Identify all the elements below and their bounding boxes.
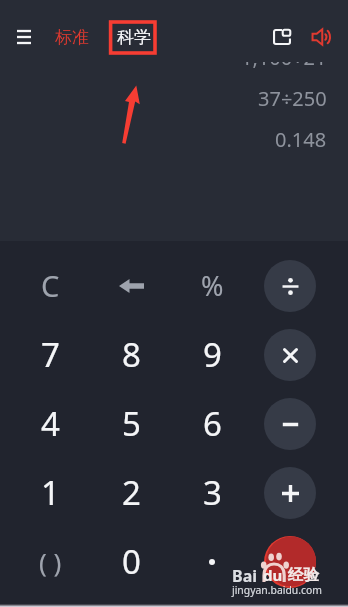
staticText: 4 xyxy=(41,401,60,446)
staticText: 5 xyxy=(122,401,141,446)
staticText: 6 xyxy=(203,401,222,446)
button[interactable]: 2 xyxy=(95,458,167,527)
staticText: 1 xyxy=(41,470,60,515)
button[interactable]: 科学 xyxy=(113,20,155,55)
staticText: 经验 xyxy=(288,565,319,585)
button[interactable]: 3 xyxy=(176,458,248,527)
staticText: Bai xyxy=(232,565,258,587)
button[interactable]: Divide xyxy=(264,260,316,312)
button[interactable]: 5 xyxy=(95,389,167,458)
button[interactable]: C xyxy=(14,251,86,320)
staticText: 37÷250 xyxy=(258,85,327,112)
staticText: 9 xyxy=(203,332,222,377)
staticText: 标准 xyxy=(55,27,89,48)
button[interactable]: Plus xyxy=(264,467,316,519)
staticText: 0.148 xyxy=(275,126,327,153)
button[interactable]: 1 xyxy=(14,458,86,527)
staticText: C xyxy=(41,266,60,305)
button[interactable]: Equals xyxy=(254,527,326,596)
button[interactable]: Backspace xyxy=(111,266,151,306)
button[interactable]: 4 xyxy=(14,389,86,458)
staticText: 7 xyxy=(41,332,60,377)
button[interactable]: Menu xyxy=(6,19,42,55)
button[interactable]: Backspace xyxy=(95,251,167,320)
staticText: 3 xyxy=(203,470,222,515)
button[interactable]: 8 xyxy=(95,320,167,389)
staticText: 科学 xyxy=(117,27,151,48)
staticText: % xyxy=(201,267,224,304)
staticText: jingyan.baidu.com xyxy=(232,583,322,597)
button[interactable] xyxy=(176,527,248,596)
button[interactable]: ( ) xyxy=(14,527,86,596)
button[interactable]: 9 xyxy=(176,320,248,389)
button[interactable]: % xyxy=(176,251,248,320)
staticText: ( ) xyxy=(39,544,62,579)
button[interactable]: 6 xyxy=(176,389,248,458)
button[interactable]: Equals xyxy=(264,536,316,588)
staticText: du xyxy=(263,565,283,585)
button[interactable]: Multiply xyxy=(254,320,326,389)
button[interactable]: Multiply xyxy=(264,329,316,381)
button[interactable]: Minus xyxy=(254,389,326,458)
button[interactable]: Floating window xyxy=(263,18,301,56)
button[interactable]: Plus xyxy=(254,458,326,527)
button[interactable]: 标准 xyxy=(51,20,93,55)
button[interactable]: Minus xyxy=(264,398,316,450)
staticText: 2 xyxy=(122,470,141,515)
staticText: 8 xyxy=(122,332,141,377)
button[interactable]: 7 xyxy=(14,320,86,389)
button[interactable]: Divide xyxy=(254,251,326,320)
staticText: 0 xyxy=(122,539,141,584)
button[interactable]: 0 xyxy=(95,527,167,596)
button[interactable]: Sound xyxy=(302,18,340,56)
staticText: 1,100÷21 xyxy=(241,62,327,71)
